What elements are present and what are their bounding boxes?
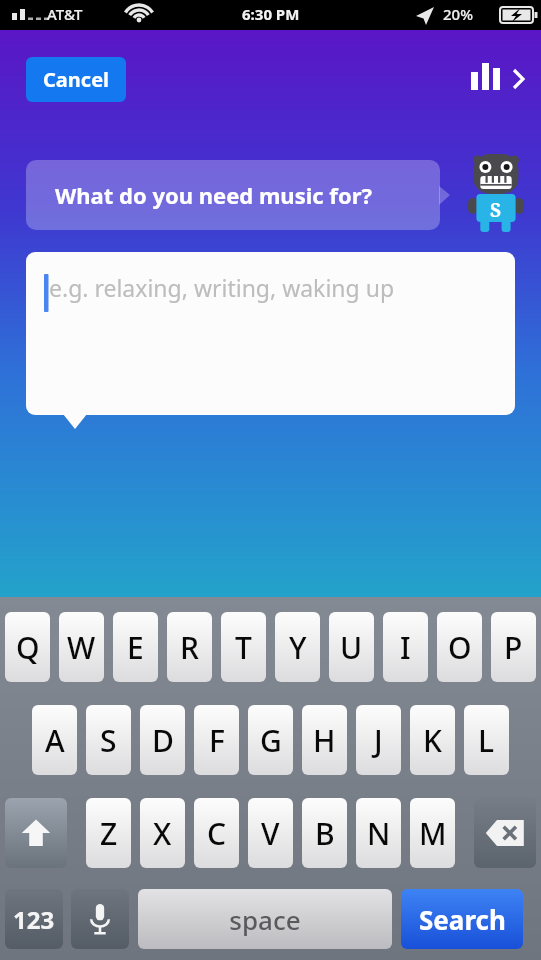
button[interactable]: R bbox=[167, 612, 212, 682]
button[interactable]: space bbox=[138, 889, 392, 949]
staticText: J bbox=[374, 720, 383, 761]
staticText: L bbox=[478, 720, 495, 761]
staticText: X bbox=[153, 813, 172, 854]
button[interactable]: N bbox=[356, 798, 401, 868]
staticText: W bbox=[67, 627, 96, 668]
button[interactable]: D bbox=[140, 705, 185, 775]
button[interactable]: O bbox=[437, 612, 482, 682]
staticText: Y bbox=[289, 627, 307, 668]
staticText: H bbox=[313, 720, 336, 761]
staticText: 123 bbox=[13, 903, 55, 936]
button[interactable]: W bbox=[59, 612, 104, 682]
staticText: Cancel bbox=[43, 66, 110, 93]
button[interactable]: Q bbox=[5, 612, 50, 682]
button[interactable]: B bbox=[302, 798, 347, 868]
button[interactable]: Backspace bbox=[474, 798, 536, 868]
button[interactable]: T bbox=[221, 612, 266, 682]
staticText: P bbox=[504, 627, 523, 668]
staticText: M bbox=[419, 813, 447, 854]
staticText: AT&T bbox=[47, 4, 83, 24]
staticText: Q bbox=[16, 627, 40, 668]
staticText: What do you need music for? bbox=[55, 180, 372, 210]
staticText: e.g. relaxing, writing, waking up bbox=[49, 272, 395, 303]
staticText: Z bbox=[100, 813, 118, 854]
staticText: F bbox=[209, 720, 225, 761]
button[interactable]: K bbox=[410, 705, 455, 775]
button[interactable]: P bbox=[491, 612, 536, 682]
button[interactable]: Y bbox=[275, 612, 320, 682]
button[interactable]: X bbox=[140, 798, 185, 868]
staticText: A bbox=[45, 720, 65, 761]
staticText: U bbox=[340, 627, 363, 668]
button[interactable]: F bbox=[194, 705, 239, 775]
staticText: V bbox=[261, 813, 280, 854]
staticText: T bbox=[235, 627, 252, 668]
staticText: D bbox=[152, 720, 174, 761]
button[interactable]: C bbox=[194, 798, 239, 868]
staticText: 6:30 PM bbox=[242, 4, 300, 24]
button[interactable]: M bbox=[410, 798, 455, 868]
staticText: B bbox=[315, 813, 335, 854]
button[interactable]: e.g. relaxing, writing, waking up bbox=[26, 252, 515, 392]
staticText: Search bbox=[419, 902, 506, 937]
button[interactable]: Z bbox=[86, 798, 131, 868]
staticText: O bbox=[448, 627, 472, 668]
button[interactable]: Audio levels bbox=[459, 52, 523, 100]
staticText: C bbox=[207, 813, 227, 854]
staticText: R bbox=[180, 627, 199, 668]
button[interactable]: S bbox=[86, 705, 131, 775]
staticText: S bbox=[490, 197, 502, 223]
staticText: K bbox=[423, 720, 442, 761]
button[interactable]: A bbox=[32, 705, 77, 775]
button[interactable]: J bbox=[356, 705, 401, 775]
staticText: N bbox=[367, 813, 391, 854]
button[interactable]: G bbox=[248, 705, 293, 775]
button[interactable]: 123 bbox=[5, 889, 63, 949]
button[interactable]: E bbox=[113, 612, 158, 682]
button[interactable]: Cancel bbox=[26, 57, 126, 102]
staticText: E bbox=[127, 627, 144, 668]
button[interactable]: Search bbox=[401, 889, 523, 949]
button[interactable]: H bbox=[302, 705, 347, 775]
staticText: space bbox=[229, 902, 301, 937]
button[interactable]: V bbox=[248, 798, 293, 868]
button[interactable]: L bbox=[464, 705, 509, 775]
button[interactable]: U bbox=[329, 612, 374, 682]
button[interactable]: I bbox=[383, 612, 428, 682]
button[interactable]: Shift bbox=[5, 798, 67, 868]
staticText: I bbox=[400, 627, 411, 668]
staticText: S bbox=[100, 720, 117, 761]
staticText: 20% bbox=[443, 4, 473, 24]
staticText: G bbox=[260, 720, 282, 761]
button[interactable]: Dictation bbox=[71, 889, 129, 949]
